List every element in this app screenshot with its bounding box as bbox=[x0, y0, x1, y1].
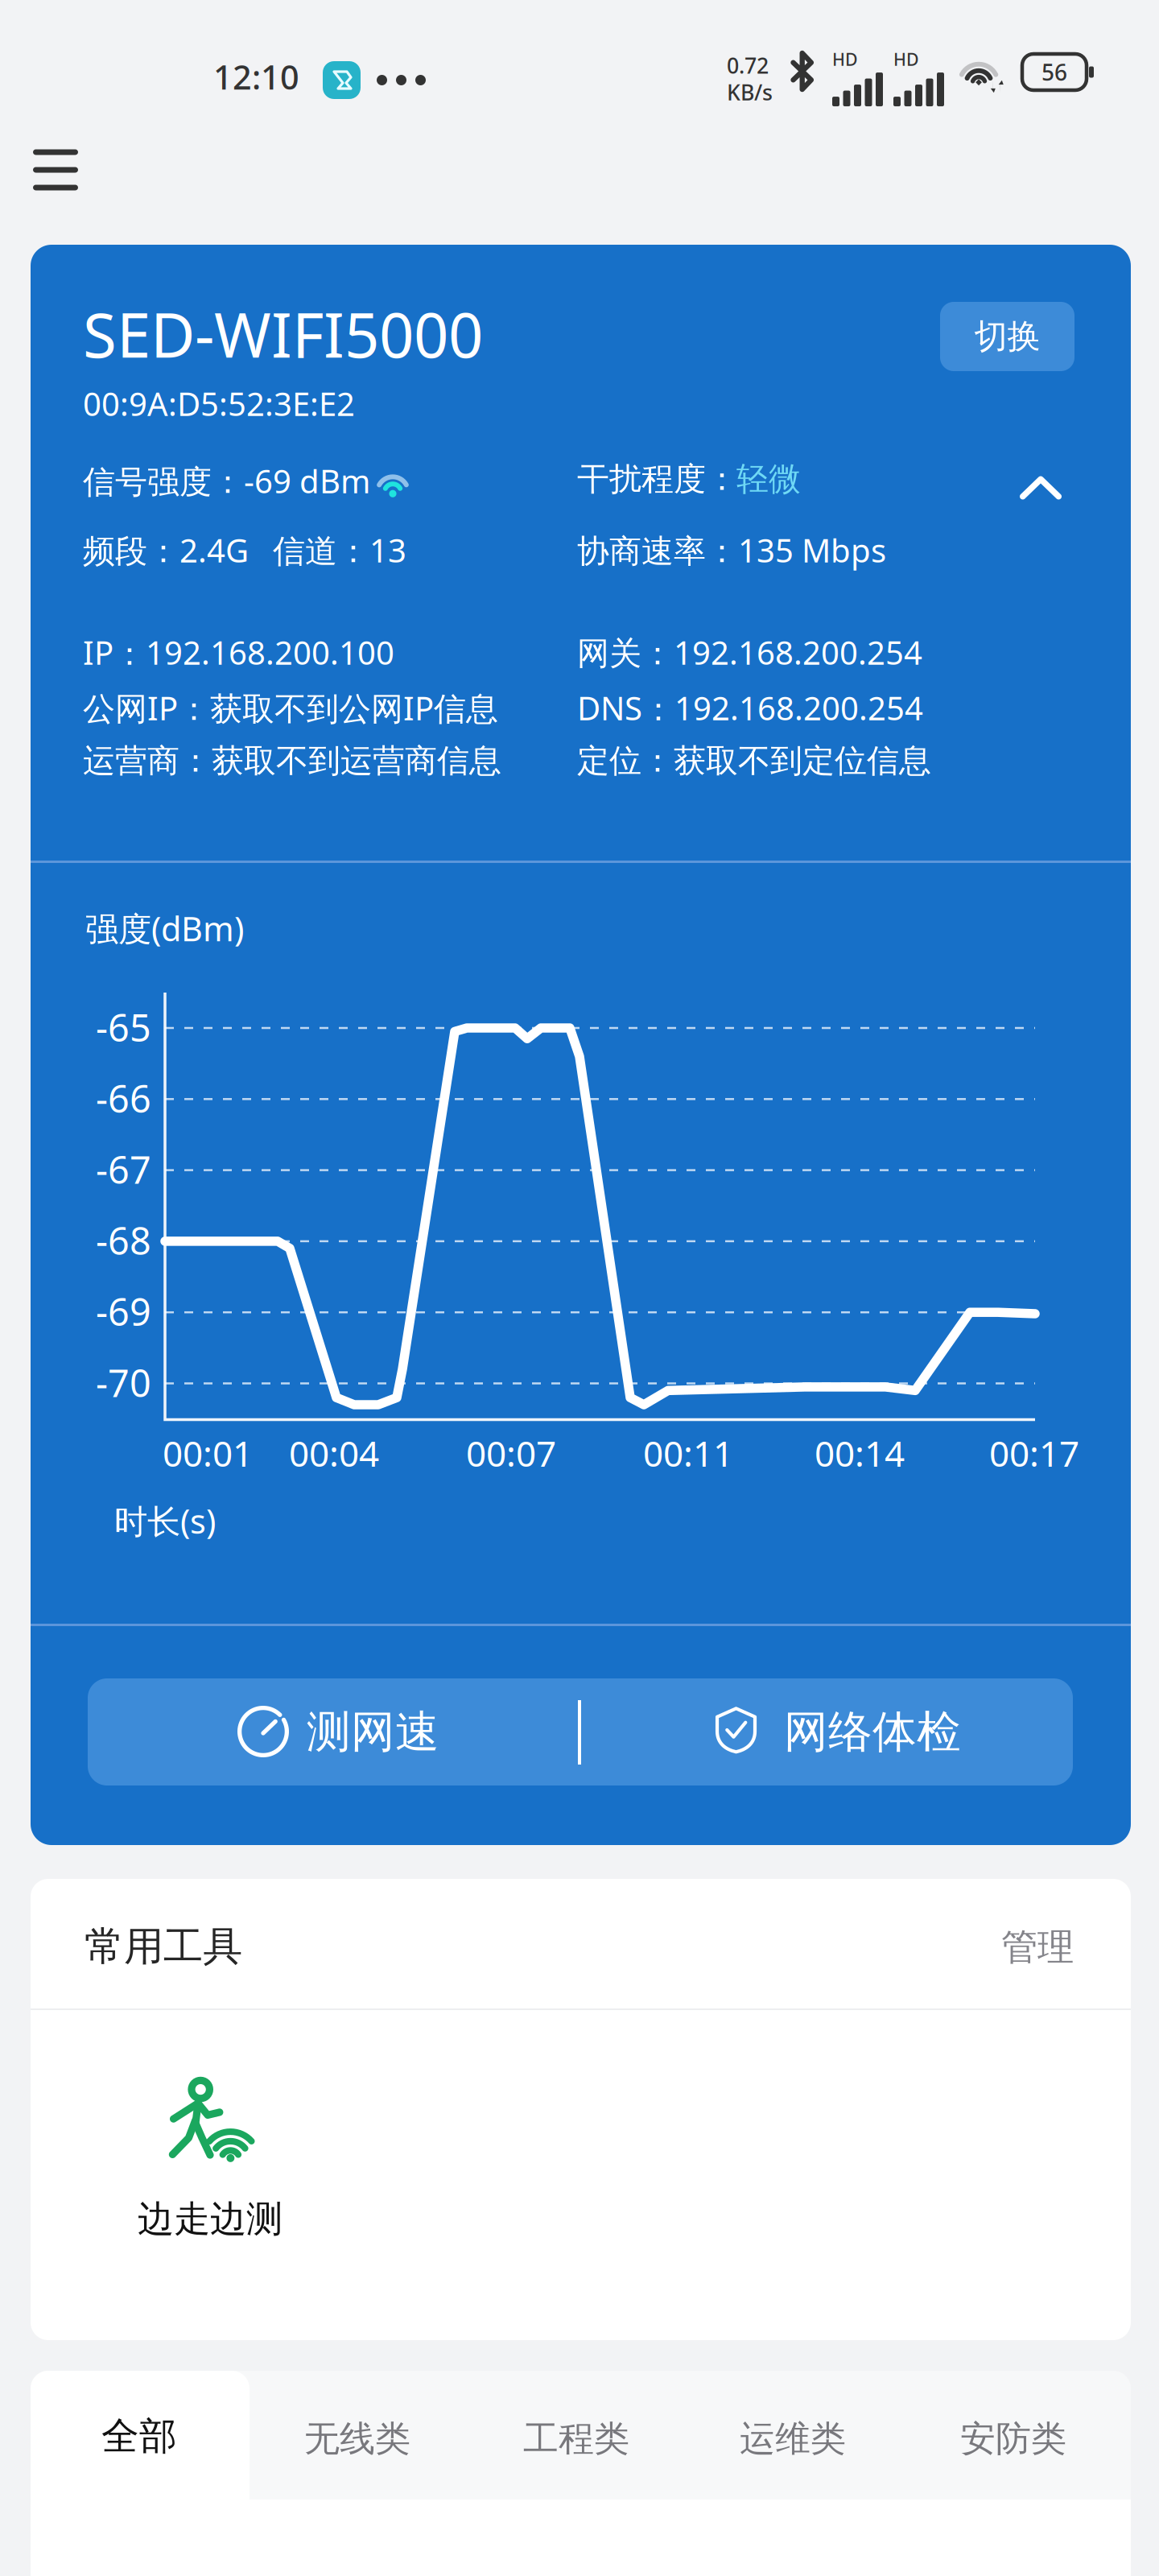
staticText: 00:04 bbox=[289, 1429, 379, 1477]
staticText: 12:10 bbox=[213, 54, 299, 99]
button[interactable]: 切换 bbox=[940, 302, 1074, 371]
staticText: 时长(s) bbox=[114, 1498, 216, 1543]
staticText: 0.72 bbox=[727, 51, 769, 80]
staticText: -69 bbox=[96, 1286, 151, 1337]
button[interactable] bbox=[80, 2057, 338, 2290]
button[interactable] bbox=[687, 2371, 906, 2500]
staticText: -65 bbox=[96, 1001, 151, 1053]
staticText: 边走边测 bbox=[138, 2196, 283, 2242]
staticText: 00:9A:D5:52:3E:E2 bbox=[83, 382, 355, 425]
staticText: -68 bbox=[96, 1215, 151, 1266]
staticText: 00:17 bbox=[989, 1429, 1079, 1477]
staticText: 全部 bbox=[101, 2413, 177, 2460]
button[interactable] bbox=[579, 1678, 1073, 1785]
staticText: 安防类 bbox=[960, 2417, 1066, 2461]
staticText: 运维类 bbox=[740, 2417, 846, 2461]
staticText: 00:11 bbox=[643, 1429, 733, 1477]
staticText: 常用工具 bbox=[85, 1922, 242, 1972]
staticText: 网关：192.168.200.254 bbox=[577, 630, 922, 674]
staticText: 公网IP：获取不到公网IP信息 bbox=[83, 686, 498, 730]
button[interactable]: Menu bbox=[10, 126, 101, 214]
staticText: 56 bbox=[1041, 57, 1067, 87]
button[interactable] bbox=[250, 2371, 468, 2500]
button[interactable] bbox=[31, 2371, 250, 2500]
button[interactable] bbox=[906, 2371, 1125, 2500]
staticText: 运营商：获取不到运营商信息 bbox=[83, 741, 501, 781]
button[interactable] bbox=[468, 2371, 687, 2500]
staticText: 强度(dBm) bbox=[85, 906, 244, 951]
staticText: HD bbox=[893, 47, 919, 71]
staticText: 信号强度：-69 dBm bbox=[83, 459, 370, 503]
staticText: 干扰程度： bbox=[577, 459, 738, 499]
staticText: 切换 bbox=[974, 316, 1040, 358]
staticText: 频段：2.4G 信道：13 bbox=[83, 528, 406, 572]
staticText: 协商速率：135 Mbps bbox=[577, 528, 886, 572]
staticText: SED-WIFI5000 bbox=[83, 292, 483, 376]
staticText: KB/s bbox=[727, 78, 773, 107]
staticText: 工程类 bbox=[523, 2417, 629, 2461]
staticText: -66 bbox=[96, 1073, 151, 1124]
staticText: 00:01 bbox=[163, 1429, 253, 1477]
staticText: -67 bbox=[96, 1144, 151, 1195]
staticText: 网络体检 bbox=[784, 1704, 961, 1760]
staticText: DNS：192.168.200.254 bbox=[577, 686, 923, 730]
button[interactable]: 管理 bbox=[985, 1907, 1090, 1988]
staticText: 00:07 bbox=[466, 1429, 556, 1477]
staticText: 无线类 bbox=[304, 2417, 410, 2461]
staticText: -70 bbox=[96, 1357, 151, 1408]
staticText: 00:14 bbox=[815, 1429, 905, 1477]
staticText: HD bbox=[832, 47, 858, 71]
button[interactable]: Collapse bbox=[1000, 448, 1081, 528]
staticText: 轻微 bbox=[736, 459, 801, 499]
staticText: 定位：获取不到定位信息 bbox=[577, 741, 931, 781]
button[interactable] bbox=[88, 1678, 579, 1785]
staticText: IP：192.168.200.100 bbox=[83, 630, 394, 674]
staticText: 管理 bbox=[1001, 1924, 1074, 1970]
staticText: 测网速 bbox=[307, 1704, 439, 1760]
